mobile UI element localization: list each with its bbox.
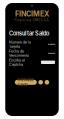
button[interactable]: Número de la Tarjeta [9,40,55,49]
button[interactable]: Refrescar [38,80,43,85]
staticText: Número de la Tarjeta [9,40,31,49]
staticText: Financiera CIMEX S.A. [14,18,49,22]
button[interactable]: Escriba el Captcha [9,58,55,67]
button[interactable]: Fecha de Vencimiento [9,49,55,58]
staticText: Escriba el Captcha [9,58,25,67]
staticText: Fecha de Vencimiento [9,49,29,58]
staticText: FINCIMEX [15,10,49,18]
button[interactable]: Consultar Saldo [15,80,37,85]
staticText: Consultar Saldo [9,30,49,37]
button[interactable]: Ayuda [45,80,49,85]
staticText: Consultar Saldo [17,77,34,87]
